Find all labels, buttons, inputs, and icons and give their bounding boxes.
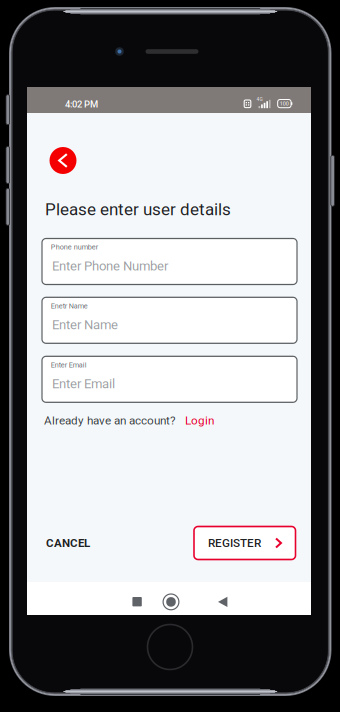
button[interactable]: Back xyxy=(49,147,76,174)
staticText: Please enter user details xyxy=(45,199,231,219)
staticText: 100 xyxy=(280,100,289,107)
staticText: Enter Email xyxy=(51,361,87,369)
staticText: CANCEL xyxy=(46,536,90,550)
button[interactable]: Phone number xyxy=(42,238,297,284)
staticText: REGISTER xyxy=(208,536,261,550)
button[interactable]: Back xyxy=(201,585,245,618)
staticText: Login xyxy=(185,414,214,427)
staticText: Enter Phone Number xyxy=(52,258,168,274)
button[interactable]: Home xyxy=(149,585,193,618)
button[interactable]: REGISTER xyxy=(194,526,295,559)
staticText: 4:02 PM xyxy=(65,99,98,110)
button[interactable]: Recent apps xyxy=(115,585,159,618)
staticText: Enetr Name xyxy=(51,302,88,310)
staticText: Enter Name xyxy=(52,317,118,332)
button[interactable]: Enetr Name xyxy=(42,297,297,343)
button[interactable]: Enter Email xyxy=(42,356,297,402)
button[interactable]: Login xyxy=(185,414,214,427)
staticText: Already have an account? xyxy=(44,414,176,427)
staticText: 4G xyxy=(256,96,262,102)
staticText: Phone number xyxy=(51,243,98,251)
button[interactable]: CANCEL xyxy=(46,526,116,559)
staticText: Enter Email xyxy=(52,376,115,391)
